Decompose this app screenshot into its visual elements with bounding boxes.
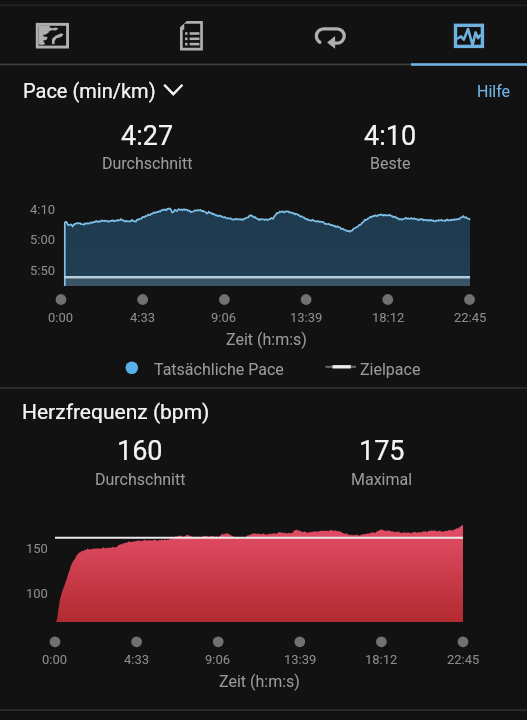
staticText: 22:45 [447, 652, 480, 667]
staticText: 5:50 [30, 263, 56, 278]
button[interactable]: Pace (min/km) [17, 74, 165, 104]
staticText: 4:10 [30, 202, 56, 217]
staticText: Zielpace [360, 360, 421, 379]
staticText: Durchschnitt [95, 470, 186, 489]
staticText: 4:27 [121, 120, 174, 152]
staticText: 4:10 [364, 120, 417, 152]
button[interactable]: Runden [261, 0, 400, 67]
staticText: 4:33 [124, 652, 150, 667]
staticText: 18:12 [372, 310, 405, 325]
staticText: 9:06 [211, 310, 237, 325]
button[interactable]: Diagramme [400, 0, 527, 67]
staticText: Maximal [351, 470, 413, 489]
button[interactable]: Details [122, 0, 261, 67]
staticText: Tatsächliche Pace [154, 360, 284, 379]
staticText: Zeit (h:m:s) [226, 330, 307, 349]
staticText: Hilfe [477, 82, 511, 101]
staticText: 0:00 [42, 652, 68, 667]
staticText: 100 [26, 586, 48, 601]
staticText: 150 [26, 541, 48, 556]
staticText: 22:45 [454, 310, 487, 325]
staticText: 18:12 [365, 652, 398, 667]
button[interactable]: Hilfe [468, 76, 526, 104]
staticText: Durchschnitt [102, 154, 193, 173]
button[interactable]: Zielpace [322, 357, 428, 379]
button[interactable]: Tatsächliche Pace [120, 357, 292, 379]
staticText: 13:39 [284, 652, 317, 667]
staticText: 4:33 [130, 310, 156, 325]
staticText: 0:00 [48, 310, 74, 325]
staticText: 5:00 [30, 232, 56, 247]
staticText: 9:06 [205, 652, 231, 667]
staticText: Beste [370, 154, 411, 173]
staticText: 175 [359, 435, 405, 467]
staticText: Herzfrequenz (bpm) [22, 400, 210, 425]
button[interactable]: Karte [0, 0, 122, 67]
staticText: 160 [117, 435, 163, 467]
staticText: Pace (min/km) [23, 79, 156, 102]
staticText: Zeit (h:m:s) [219, 672, 300, 691]
staticText: 13:39 [290, 310, 323, 325]
